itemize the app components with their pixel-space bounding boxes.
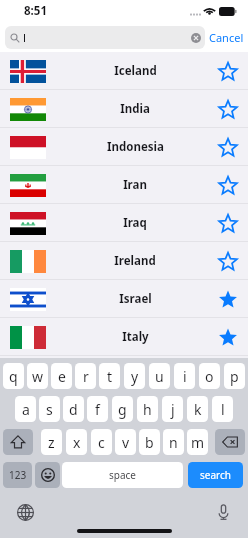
staticText: q [9, 367, 18, 386]
staticText: o [205, 367, 214, 386]
button[interactable]: Ireland [0, 242, 248, 280]
staticText: b [145, 433, 154, 452]
staticText: search [200, 468, 231, 482]
button[interactable]: m [187, 429, 208, 455]
staticText: m [191, 433, 205, 452]
button[interactable]: h [137, 396, 158, 422]
staticText: k [194, 400, 202, 419]
staticText: Iran [123, 177, 147, 193]
staticText: 123 [9, 468, 27, 482]
staticText: f [95, 400, 100, 419]
button[interactable]: Italy [0, 318, 248, 356]
button[interactable]: India [0, 90, 248, 128]
staticText: j [171, 400, 175, 419]
button[interactable]: Next keyboard [14, 501, 36, 523]
button[interactable]: r [75, 363, 96, 389]
staticText: t [107, 367, 113, 386]
staticText: n [169, 433, 178, 452]
button[interactable]: w [27, 363, 48, 389]
button[interactable]: Cancel [205, 22, 248, 52]
button[interactable]: Israel [0, 280, 248, 318]
button[interactable]: f [87, 396, 108, 422]
button[interactable]: e [51, 363, 72, 389]
staticText: Ireland [114, 253, 156, 269]
button[interactable]: s [39, 396, 60, 422]
button[interactable]: Emoji [35, 462, 60, 488]
staticText: a [22, 400, 30, 419]
button[interactable]: q [3, 363, 24, 389]
staticText: w [32, 367, 44, 386]
button[interactable]: x [66, 429, 87, 455]
button[interactable]: g [112, 396, 133, 422]
button[interactable]: k [187, 396, 208, 422]
button[interactable]: b [139, 429, 160, 455]
staticText: g [118, 400, 127, 419]
button[interactable] [5, 26, 205, 49]
button[interactable]: Iceland [0, 52, 248, 90]
button[interactable]: d [63, 396, 84, 422]
staticText: c [98, 433, 105, 452]
button[interactable]: Shift [3, 429, 33, 455]
staticText: India [120, 101, 150, 117]
staticText: e [58, 367, 66, 386]
staticText: z [48, 433, 55, 452]
button[interactable]: Dictation [212, 501, 234, 523]
staticText: y [131, 367, 139, 386]
staticText: s [46, 400, 53, 419]
button[interactable]: j [162, 396, 183, 422]
button[interactable]: Indonesia [0, 128, 248, 166]
staticText: v [122, 433, 130, 452]
button[interactable]: c [91, 429, 112, 455]
staticText: p [230, 367, 239, 386]
staticText: space [109, 468, 136, 482]
button[interactable]: p [224, 363, 245, 389]
staticText: u [155, 367, 164, 386]
button[interactable]: v [115, 429, 136, 455]
button[interactable]: Backspace [215, 429, 245, 455]
staticText: Italy [122, 329, 149, 345]
staticText: Indonesia [107, 139, 164, 155]
staticText: i [183, 367, 187, 386]
button[interactable]: i [174, 363, 195, 389]
staticText: Israel [119, 291, 152, 307]
button[interactable]: y [124, 363, 145, 389]
staticText: l [221, 400, 225, 419]
staticText: d [69, 400, 78, 419]
button[interactable]: 123 [3, 462, 32, 488]
button[interactable]: space [62, 462, 183, 488]
staticText: 8:51 [24, 3, 47, 19]
button[interactable]: t [99, 363, 120, 389]
button[interactable]: Iran [0, 166, 248, 204]
button[interactable]: u [149, 363, 170, 389]
staticText: r [83, 367, 89, 386]
button[interactable]: search [188, 462, 243, 488]
button[interactable]: l [212, 396, 233, 422]
staticText: Iceland [114, 63, 157, 79]
button[interactable]: o [199, 363, 220, 389]
staticText: Iraq [123, 215, 147, 231]
staticText: h [143, 400, 152, 419]
button[interactable]: n [163, 429, 184, 455]
staticText: Cancel [209, 30, 244, 45]
button[interactable]: Iraq [0, 204, 248, 242]
button[interactable]: a [15, 396, 36, 422]
staticText: x [73, 433, 81, 452]
button[interactable]: z [41, 429, 62, 455]
